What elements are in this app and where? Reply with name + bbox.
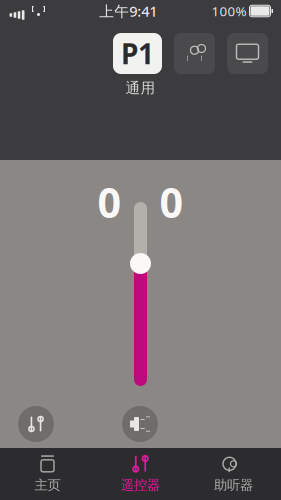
- button[interactable]: 主页: [1, 448, 94, 500]
- button[interactable]: 声音调节: [18, 406, 54, 442]
- staticText: 主页: [34, 477, 60, 493]
- staticText: 上午9:41: [99, 1, 157, 21]
- button[interactable]: 语音程序: [174, 33, 215, 74]
- staticText: 助听器: [214, 477, 253, 493]
- button[interactable]: P1: [113, 33, 162, 74]
- button[interactable]: 遥控器: [94, 448, 187, 500]
- staticText: 遥控器: [121, 477, 160, 493]
- button[interactable]: 助听器: [187, 448, 280, 500]
- staticText: 0: [97, 175, 121, 229]
- staticText: 100%: [211, 2, 246, 20]
- button[interactable]: 音量: [122, 406, 158, 442]
- button[interactable]: 电视程序: [227, 33, 268, 74]
- staticText: 通用: [125, 79, 155, 97]
- staticText: P1: [121, 35, 154, 72]
- staticText: 0: [159, 175, 183, 229]
